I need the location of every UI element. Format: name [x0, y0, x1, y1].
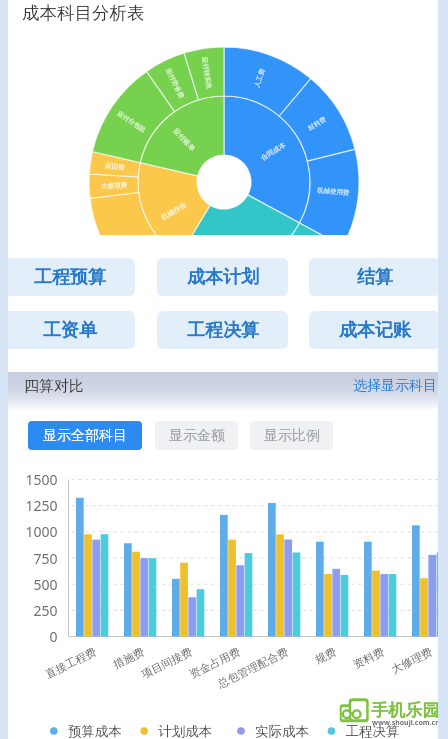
staticText: 显示比例	[264, 427, 320, 445]
staticText: 选择显示科目	[353, 377, 437, 395]
button[interactable]: 显示金额	[155, 421, 238, 450]
staticText: 四算对比	[24, 377, 84, 396]
staticText: 成本科目分析表	[22, 2, 145, 24]
button[interactable]: 成本计划	[157, 258, 288, 296]
button[interactable]: 工程决算	[157, 311, 288, 349]
staticText: 显示金额	[169, 427, 225, 445]
staticText: 结算	[357, 266, 393, 289]
staticText: 工资单	[43, 319, 97, 342]
staticText: 成本计划	[187, 266, 259, 289]
button[interactable]: 选择显示科目	[353, 374, 448, 398]
staticText: 工程决算	[187, 319, 259, 342]
button[interactable]: 显示比例	[250, 421, 333, 450]
staticText: 成本记账	[339, 319, 411, 342]
button[interactable]: 结算	[309, 258, 440, 296]
button[interactable]: 成本记账	[309, 311, 440, 349]
staticText: 显示全部科目	[43, 427, 127, 445]
button[interactable]: 显示全部科目	[28, 421, 142, 450]
staticText: 工程预算	[34, 266, 106, 289]
button[interactable]: 工程预算	[4, 258, 135, 296]
button[interactable]: 工资单	[4, 311, 135, 349]
